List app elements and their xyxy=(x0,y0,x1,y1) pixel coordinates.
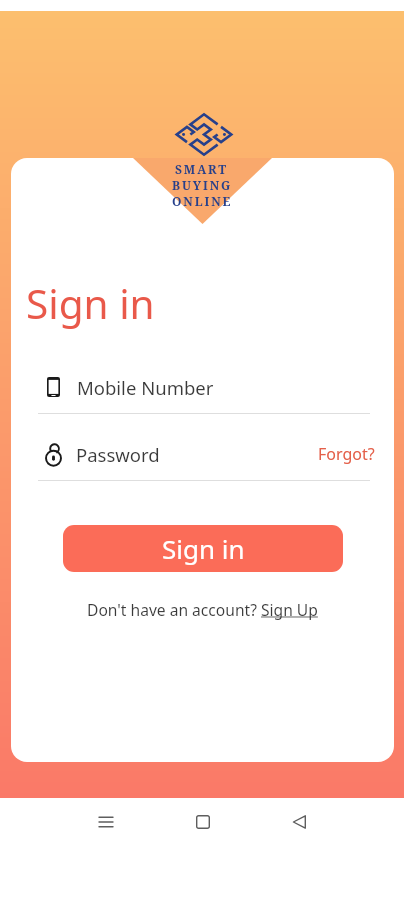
button[interactable]: Recents xyxy=(82,798,130,846)
button[interactable]: Back xyxy=(275,798,323,846)
staticText: Password xyxy=(76,442,160,467)
button[interactable]: Mobile Number xyxy=(38,372,370,414)
button[interactable]: Home xyxy=(179,798,227,846)
button[interactable]: Sign in xyxy=(63,525,343,572)
staticText: Sign in xyxy=(162,531,245,566)
staticText: BUYING xyxy=(172,177,233,193)
button[interactable]: Forgot? xyxy=(318,443,375,465)
staticText: Don't have an account? xyxy=(87,599,261,620)
staticText: Sign in xyxy=(26,276,155,331)
button[interactable]: Sign Up xyxy=(261,599,318,620)
staticText: Mobile Number xyxy=(77,375,214,400)
staticText: SMART xyxy=(175,161,229,177)
staticText: ONLINE xyxy=(172,193,233,209)
